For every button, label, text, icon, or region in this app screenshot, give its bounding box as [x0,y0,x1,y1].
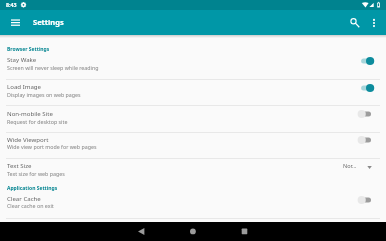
staticText: Display images on web pages [7,91,81,98]
staticText: 8:43 [6,1,17,8]
staticText: Application Settings [7,185,58,192]
staticText: Load Image [7,82,41,90]
staticText: Text Size [7,161,32,169]
button[interactable]: Disabled toggle [353,106,379,122]
button[interactable] [0,53,386,79]
button[interactable]: Search [344,10,364,35]
button[interactable]: Text size: Nor… [338,159,378,174]
button[interactable]: Disabled toggle [353,132,379,148]
button[interactable] [0,192,386,218]
button[interactable]: Enabled toggle [353,80,379,96]
button[interactable] [0,132,386,157]
staticText: Clear cache on exit [7,202,54,209]
staticText: Browser Settings [7,46,50,53]
button[interactable]: Home [179,222,207,241]
button[interactable] [0,158,386,181]
button[interactable]: Recent apps [230,222,258,241]
staticText: Settings [33,17,64,27]
staticText: Clear Cache [7,194,41,202]
button[interactable] [0,79,386,105]
staticText: Nor… [343,162,357,169]
button[interactable]: Enabled toggle [353,53,379,69]
staticText: Wide view port mode for web pages [7,143,97,150]
button[interactable] [0,106,386,132]
staticText: Non-mobile Site [7,109,53,117]
button[interactable]: Back [128,222,156,241]
staticText: Text size for web pages [7,170,65,177]
button[interactable]: Disabled toggle [353,192,379,208]
staticText: Wide Viewport [7,135,49,143]
staticText: Screen will never sleep while reading [7,64,99,71]
staticText: Stay Wake [7,55,37,63]
button[interactable]: Open navigation menu [4,10,26,35]
button[interactable]: More options [365,10,383,35]
staticText: Request for desktop site [7,118,68,125]
